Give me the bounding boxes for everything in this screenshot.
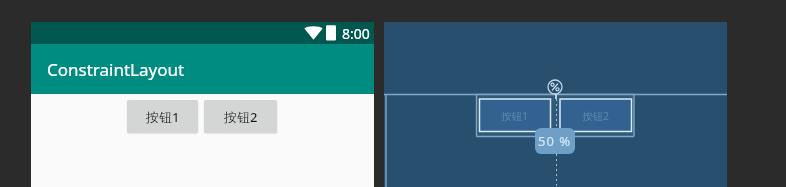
- button[interactable]: 按钮2: [204, 100, 277, 133]
- button[interactable]: 50 %: [535, 128, 575, 154]
- staticText: 按钮1: [146, 108, 180, 126]
- staticText: 按钮2: [582, 109, 610, 123]
- staticText: 按钮1: [501, 109, 529, 123]
- staticText: ConstraintLayout: [47, 58, 185, 81]
- button[interactable]: 按钮1: [127, 100, 198, 133]
- staticText: 50 %: [538, 132, 572, 150]
- button[interactable]: Percent guideline: [547, 79, 563, 95]
- staticText: 按钮2: [224, 108, 258, 126]
- staticText: 8:00: [342, 24, 370, 43]
